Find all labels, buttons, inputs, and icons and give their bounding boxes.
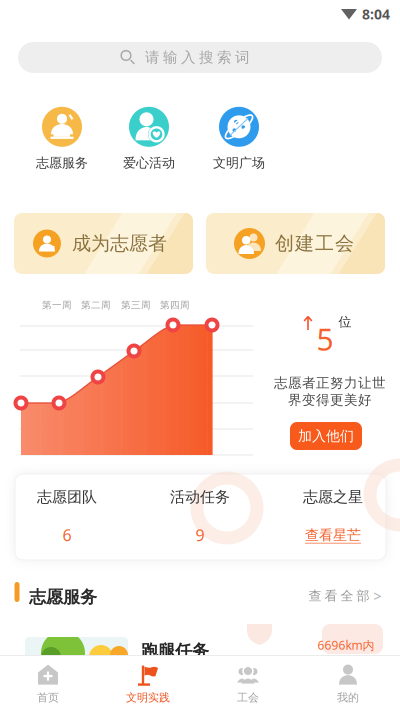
button[interactable]: 创 建 工 会 bbox=[206, 213, 385, 274]
staticText: 查看星芒 bbox=[305, 526, 361, 544]
button[interactable]: 文明广场 bbox=[213, 107, 265, 171]
staticText: 请 输 入 搜 索 词 bbox=[145, 48, 250, 67]
staticText: 创 建 工 会 bbox=[275, 231, 354, 255]
button[interactable]: 查看星芒 bbox=[305, 526, 361, 544]
button[interactable]: 请 输 入 搜 索 词 bbox=[18, 42, 382, 73]
staticText: 8:04 bbox=[362, 4, 390, 24]
staticText: 6696km内 bbox=[317, 637, 374, 653]
staticText: 5 bbox=[316, 319, 333, 359]
staticText: 界变得更美好 bbox=[288, 391, 372, 408]
button[interactable]: 加入他们 bbox=[290, 422, 362, 450]
button[interactable]: 文明实践 bbox=[103, 660, 193, 708]
staticText: 志愿服务 bbox=[36, 155, 88, 171]
button[interactable]: 成为志愿者 bbox=[14, 213, 193, 274]
staticText: 志愿团队 bbox=[37, 488, 97, 506]
staticText: 第四周 bbox=[160, 299, 190, 311]
staticText: 第二周 bbox=[81, 299, 111, 311]
staticText: 加入他们 bbox=[298, 427, 354, 445]
staticText: 我的 bbox=[337, 691, 359, 704]
staticText: > bbox=[373, 586, 381, 606]
button[interactable]: 首页 bbox=[3, 660, 93, 708]
staticText: 跑腿任务 bbox=[141, 640, 209, 662]
button[interactable]: 跑腿任务 bbox=[0, 637, 400, 685]
button[interactable]: 查 看 全 部 bbox=[300, 586, 390, 606]
button[interactable]: 爱心活动 bbox=[123, 107, 175, 171]
staticText: 文明广场 bbox=[213, 155, 265, 171]
staticText: 首页 bbox=[37, 691, 59, 704]
staticText: 活动任务 bbox=[170, 488, 230, 506]
staticText: 查 看 全 部 bbox=[308, 588, 369, 604]
staticText: 志愿服务 bbox=[29, 586, 97, 608]
staticText: 9 bbox=[195, 524, 204, 546]
staticText: 爱心活动 bbox=[123, 155, 175, 171]
staticText: 工会 bbox=[237, 691, 259, 704]
button[interactable]: 志愿服务 bbox=[36, 107, 88, 171]
staticText: 成为志愿者 bbox=[72, 231, 167, 255]
button[interactable]: 工会 bbox=[203, 660, 293, 708]
staticText: 志愿之星 bbox=[303, 488, 363, 506]
staticText: 第三周 bbox=[121, 299, 151, 311]
staticText: 位 bbox=[338, 314, 351, 330]
button[interactable]: 我的 bbox=[303, 660, 393, 708]
staticText: 文明实践 bbox=[126, 691, 170, 704]
staticText: 第一周 bbox=[42, 299, 72, 311]
staticText: 志愿者正努力让世 bbox=[274, 374, 386, 391]
staticText: 6 bbox=[62, 524, 71, 546]
